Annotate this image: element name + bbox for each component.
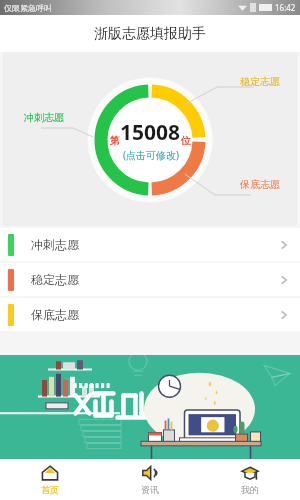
button[interactable] (0, 355, 300, 459)
button[interactable]: 第 (110, 118, 191, 162)
staticText: 资讯 (141, 484, 159, 495)
staticText: 冲刺志愿 (24, 111, 64, 124)
staticText: 15008 (120, 118, 181, 147)
staticText: 稳定志愿 (31, 272, 79, 287)
button[interactable]: 冲刺志愿 (0, 228, 300, 261)
staticText: 第 (110, 134, 120, 147)
staticText: 仅限紧急呼叫 (4, 3, 52, 13)
staticText: 位 (181, 134, 191, 147)
staticText: 保底志愿 (240, 178, 280, 191)
staticText: 保底志愿 (31, 307, 79, 322)
button[interactable]: 保底志愿 (0, 298, 300, 331)
button[interactable]: 首页 (0, 459, 100, 500)
staticText: 首页 (41, 484, 59, 495)
button[interactable]: 稳定志愿 (0, 263, 300, 296)
staticText: 冲刺志愿 (31, 237, 79, 252)
button[interactable]: 我的 (200, 459, 300, 500)
staticText: 我的 (241, 484, 259, 495)
staticText: 稳定志愿 (240, 75, 280, 88)
staticText: (点击可修改) (123, 148, 179, 162)
staticText: 16:42 (275, 2, 296, 13)
staticText: 浙版志愿填报助手 (94, 25, 206, 43)
button[interactable]: 资讯 (100, 459, 200, 500)
